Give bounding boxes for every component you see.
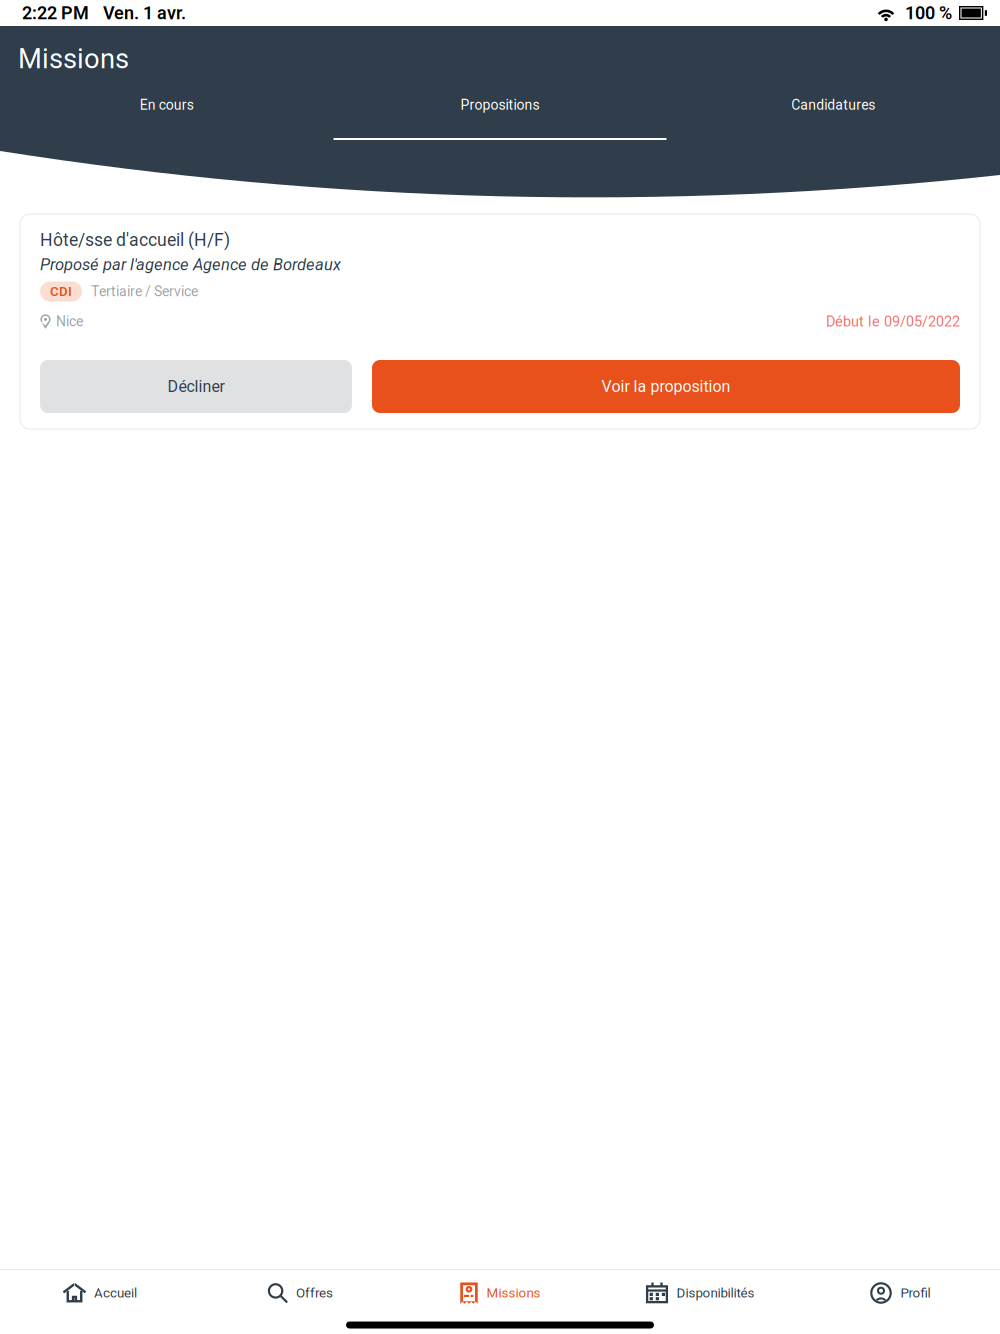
staticText: Début le 09/05/2022 [826,313,960,330]
button[interactable]: Décliner [40,360,352,413]
staticText: Tertiaire / Service [91,283,198,300]
staticText: Offres [296,1285,333,1301]
staticText: 2:22 PM [22,2,89,24]
staticText: Proposé par l'agence Agence de Bordeaux [40,255,341,274]
staticText: Missions [486,1285,540,1301]
staticText: Décliner [167,377,224,396]
button[interactable]: Profil [800,1270,1000,1316]
staticText: En cours [140,97,194,113]
staticText: Propositions [460,97,539,113]
staticText: Voir la proposition [601,377,730,396]
button[interactable]: Accueil [0,1270,200,1316]
staticText: 100 % [905,2,952,24]
staticText: Profil [900,1285,930,1301]
staticText: Nice [56,313,83,330]
button[interactable]: Candidatures [667,75,1000,140]
staticText: Candidatures [791,97,875,113]
button[interactable]: En cours [0,75,333,140]
staticText: CDI [50,284,72,299]
staticText: Disponibilités [676,1285,754,1301]
staticText: Ven. 1 avr. [103,2,186,24]
button[interactable]: Disponibilités [600,1270,800,1316]
button[interactable]: Propositions [333,75,667,140]
button[interactable]: Missions [400,1270,600,1316]
staticText: Missions [18,43,129,75]
button[interactable]: Offres [200,1270,400,1316]
staticText: Hôte/sse d'accueil (H/F) [40,230,230,250]
button[interactable]: Voir la proposition [372,360,960,413]
staticText: Accueil [94,1285,137,1301]
